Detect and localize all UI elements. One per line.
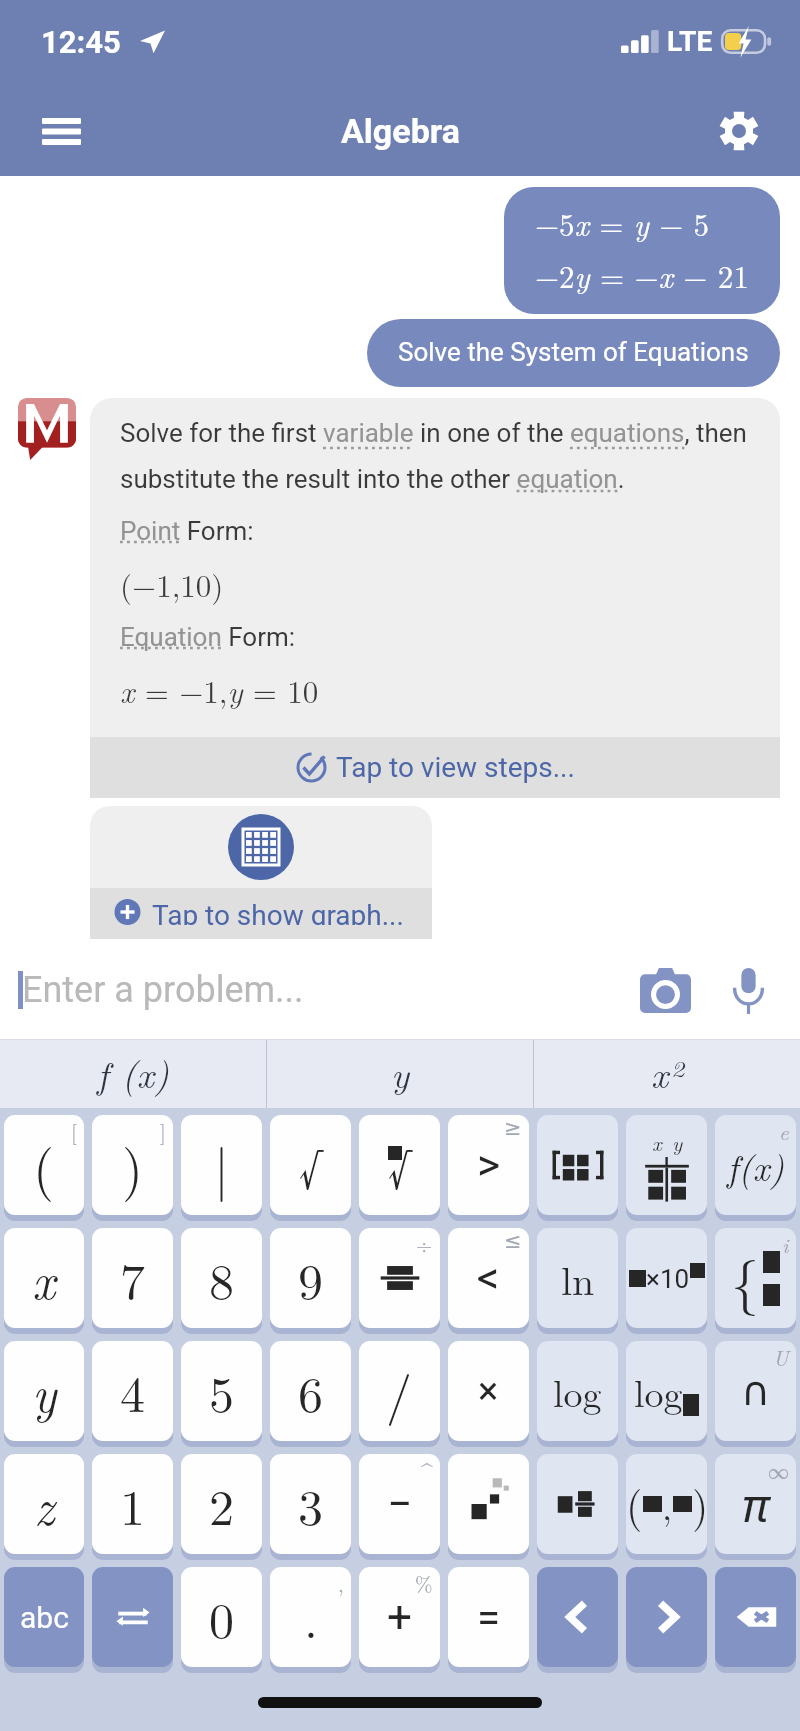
staticText: .	[304, 1582, 318, 1653]
button[interactable]: x	[4, 1228, 84, 1328]
staticText: ≥	[504, 1116, 522, 1140]
staticText: 12:45	[41, 24, 121, 60]
button[interactable]: ≤	[448, 1228, 529, 1328]
button[interactable]: 5	[181, 1341, 262, 1441]
staticText: ,	[662, 1479, 673, 1530]
staticText: Algebra	[341, 111, 460, 151]
staticText: ≤	[504, 1229, 522, 1253]
button[interactable]: %	[359, 1567, 440, 1667]
staticText: 5	[209, 1356, 234, 1427]
button[interactable]: ,	[270, 1567, 351, 1667]
button[interactable]: 1	[92, 1454, 173, 1554]
staticText: ]	[160, 1116, 166, 1146]
staticText: Enter a problem...	[22, 969, 304, 1011]
staticText: U	[773, 1342, 789, 1372]
staticText: −5x = y − 5	[535, 201, 710, 245]
button[interactable]: 3	[270, 1454, 351, 1554]
button[interactable]: abc	[4, 1567, 84, 1667]
button[interactable]: y	[267, 1040, 533, 1108]
staticText: 8	[209, 1243, 234, 1314]
button[interactable]: log	[537, 1341, 618, 1441]
button[interactable]: Camera	[632, 957, 698, 1023]
button[interactable]: f (x)	[0, 1040, 266, 1108]
button[interactable]: 8	[181, 1228, 262, 1328]
button[interactable]: Menu	[22, 92, 100, 170]
button[interactable]: [	[4, 1115, 84, 1215]
button[interactable]: right	[626, 1567, 707, 1667]
staticText: (−1,10)	[120, 562, 224, 606]
button[interactable]: swap	[92, 1567, 173, 1667]
button[interactable]: x²	[534, 1040, 800, 1108]
button[interactable]: ^	[359, 1454, 440, 1554]
staticText: z	[34, 1469, 55, 1540]
button[interactable]: table	[626, 1115, 707, 1215]
staticText: 3	[298, 1469, 323, 1540]
button[interactable]: Settings	[700, 92, 778, 170]
button[interactable]: 7	[92, 1228, 173, 1328]
staticText: Point Form:	[120, 516, 254, 546]
staticText: Solve the System of Equations	[398, 337, 749, 367]
button[interactable]: √	[270, 1115, 351, 1215]
staticText: x	[652, 1127, 662, 1157]
staticText: +	[387, 1591, 412, 1643]
button[interactable]: Solve the System of Equations	[367, 319, 780, 387]
staticText: Equation Form:	[120, 622, 296, 652]
button[interactable]: z	[4, 1454, 84, 1554]
staticText: %	[415, 1568, 433, 1598]
button[interactable]: ×	[448, 1341, 529, 1441]
button[interactable]: sci	[626, 1228, 707, 1328]
staticText: |	[214, 1127, 230, 1204]
button[interactable]: 9	[270, 1228, 351, 1328]
button[interactable]: left	[537, 1567, 618, 1667]
staticText: ^	[421, 1455, 433, 1485]
button[interactable]: −5x = y − 5	[504, 187, 780, 314]
staticText: ,	[338, 1568, 344, 1598]
button[interactable]: logb	[626, 1341, 707, 1441]
staticText: x²	[651, 1046, 683, 1098]
button[interactable]: U	[715, 1341, 796, 1441]
staticText: −	[387, 1478, 413, 1530]
button[interactable]: del	[715, 1567, 796, 1667]
button[interactable]: ln	[537, 1228, 618, 1328]
button[interactable]: pow	[448, 1454, 529, 1554]
button[interactable]: 2	[181, 1454, 262, 1554]
staticText: /	[386, 1354, 413, 1428]
button[interactable]: 0	[181, 1567, 262, 1667]
staticText: (	[626, 1474, 643, 1534]
staticText: y	[672, 1127, 683, 1157]
staticText: ×10	[646, 1264, 690, 1294]
button[interactable]: matrix	[537, 1115, 618, 1215]
staticText: ∞	[768, 1455, 789, 1485]
staticText: Solve for the first variable in one of t…	[120, 418, 747, 495]
staticText: 6	[298, 1356, 323, 1427]
button[interactable]: 6	[270, 1341, 351, 1441]
button[interactable]: e	[715, 1115, 796, 1215]
button[interactable]: mixed	[537, 1454, 618, 1554]
staticText: >	[477, 1139, 501, 1191]
button[interactable]: ]	[92, 1115, 173, 1215]
button[interactable]: y	[4, 1341, 84, 1441]
staticText: log	[553, 1364, 602, 1418]
staticText: <	[477, 1252, 500, 1304]
button[interactable]: ≥	[448, 1115, 529, 1215]
button[interactable]: Tap to view steps...	[90, 737, 780, 798]
button[interactable]: |	[181, 1115, 262, 1215]
button[interactable]: /	[359, 1341, 440, 1441]
staticText: ∩	[741, 1368, 771, 1415]
button[interactable]: interval	[626, 1454, 707, 1554]
button[interactable]: Show graph	[228, 814, 294, 880]
button[interactable]: cases	[715, 1228, 796, 1328]
staticText: π	[742, 1473, 769, 1536]
button[interactable]: ∞	[715, 1454, 796, 1554]
staticText: √	[299, 1131, 322, 1199]
staticText: i	[782, 1229, 789, 1259]
button[interactable]: Tap to show graph...	[90, 888, 432, 939]
staticText: x = −1,y = 10	[120, 668, 319, 712]
button[interactable]: nroot	[359, 1115, 440, 1215]
button[interactable]: =	[448, 1567, 529, 1667]
staticText: y	[32, 1356, 57, 1427]
button[interactable]: Voice input	[715, 957, 781, 1023]
button[interactable]: 4	[92, 1341, 173, 1441]
staticText: 9	[298, 1243, 323, 1314]
button[interactable]: frac	[359, 1228, 440, 1328]
